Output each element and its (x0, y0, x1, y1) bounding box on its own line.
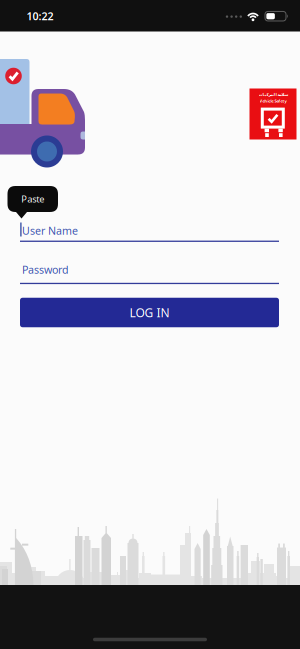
button[interactable]: Password (0, 0, 300, 649)
staticText: سلامة المركبات (258, 92, 288, 97)
button[interactable]: Paste (0, 0, 300, 649)
button[interactable]: User Name (0, 0, 300, 649)
staticText: 10:22 (26, 9, 53, 23)
staticText: Paste (21, 193, 44, 205)
staticText: LOG IN (129, 304, 169, 320)
button[interactable]: LOG IN (20, 298, 279, 327)
staticText: Password (22, 262, 69, 277)
staticText: Vehicle Safety (259, 98, 286, 104)
staticText: User Name (22, 223, 78, 238)
